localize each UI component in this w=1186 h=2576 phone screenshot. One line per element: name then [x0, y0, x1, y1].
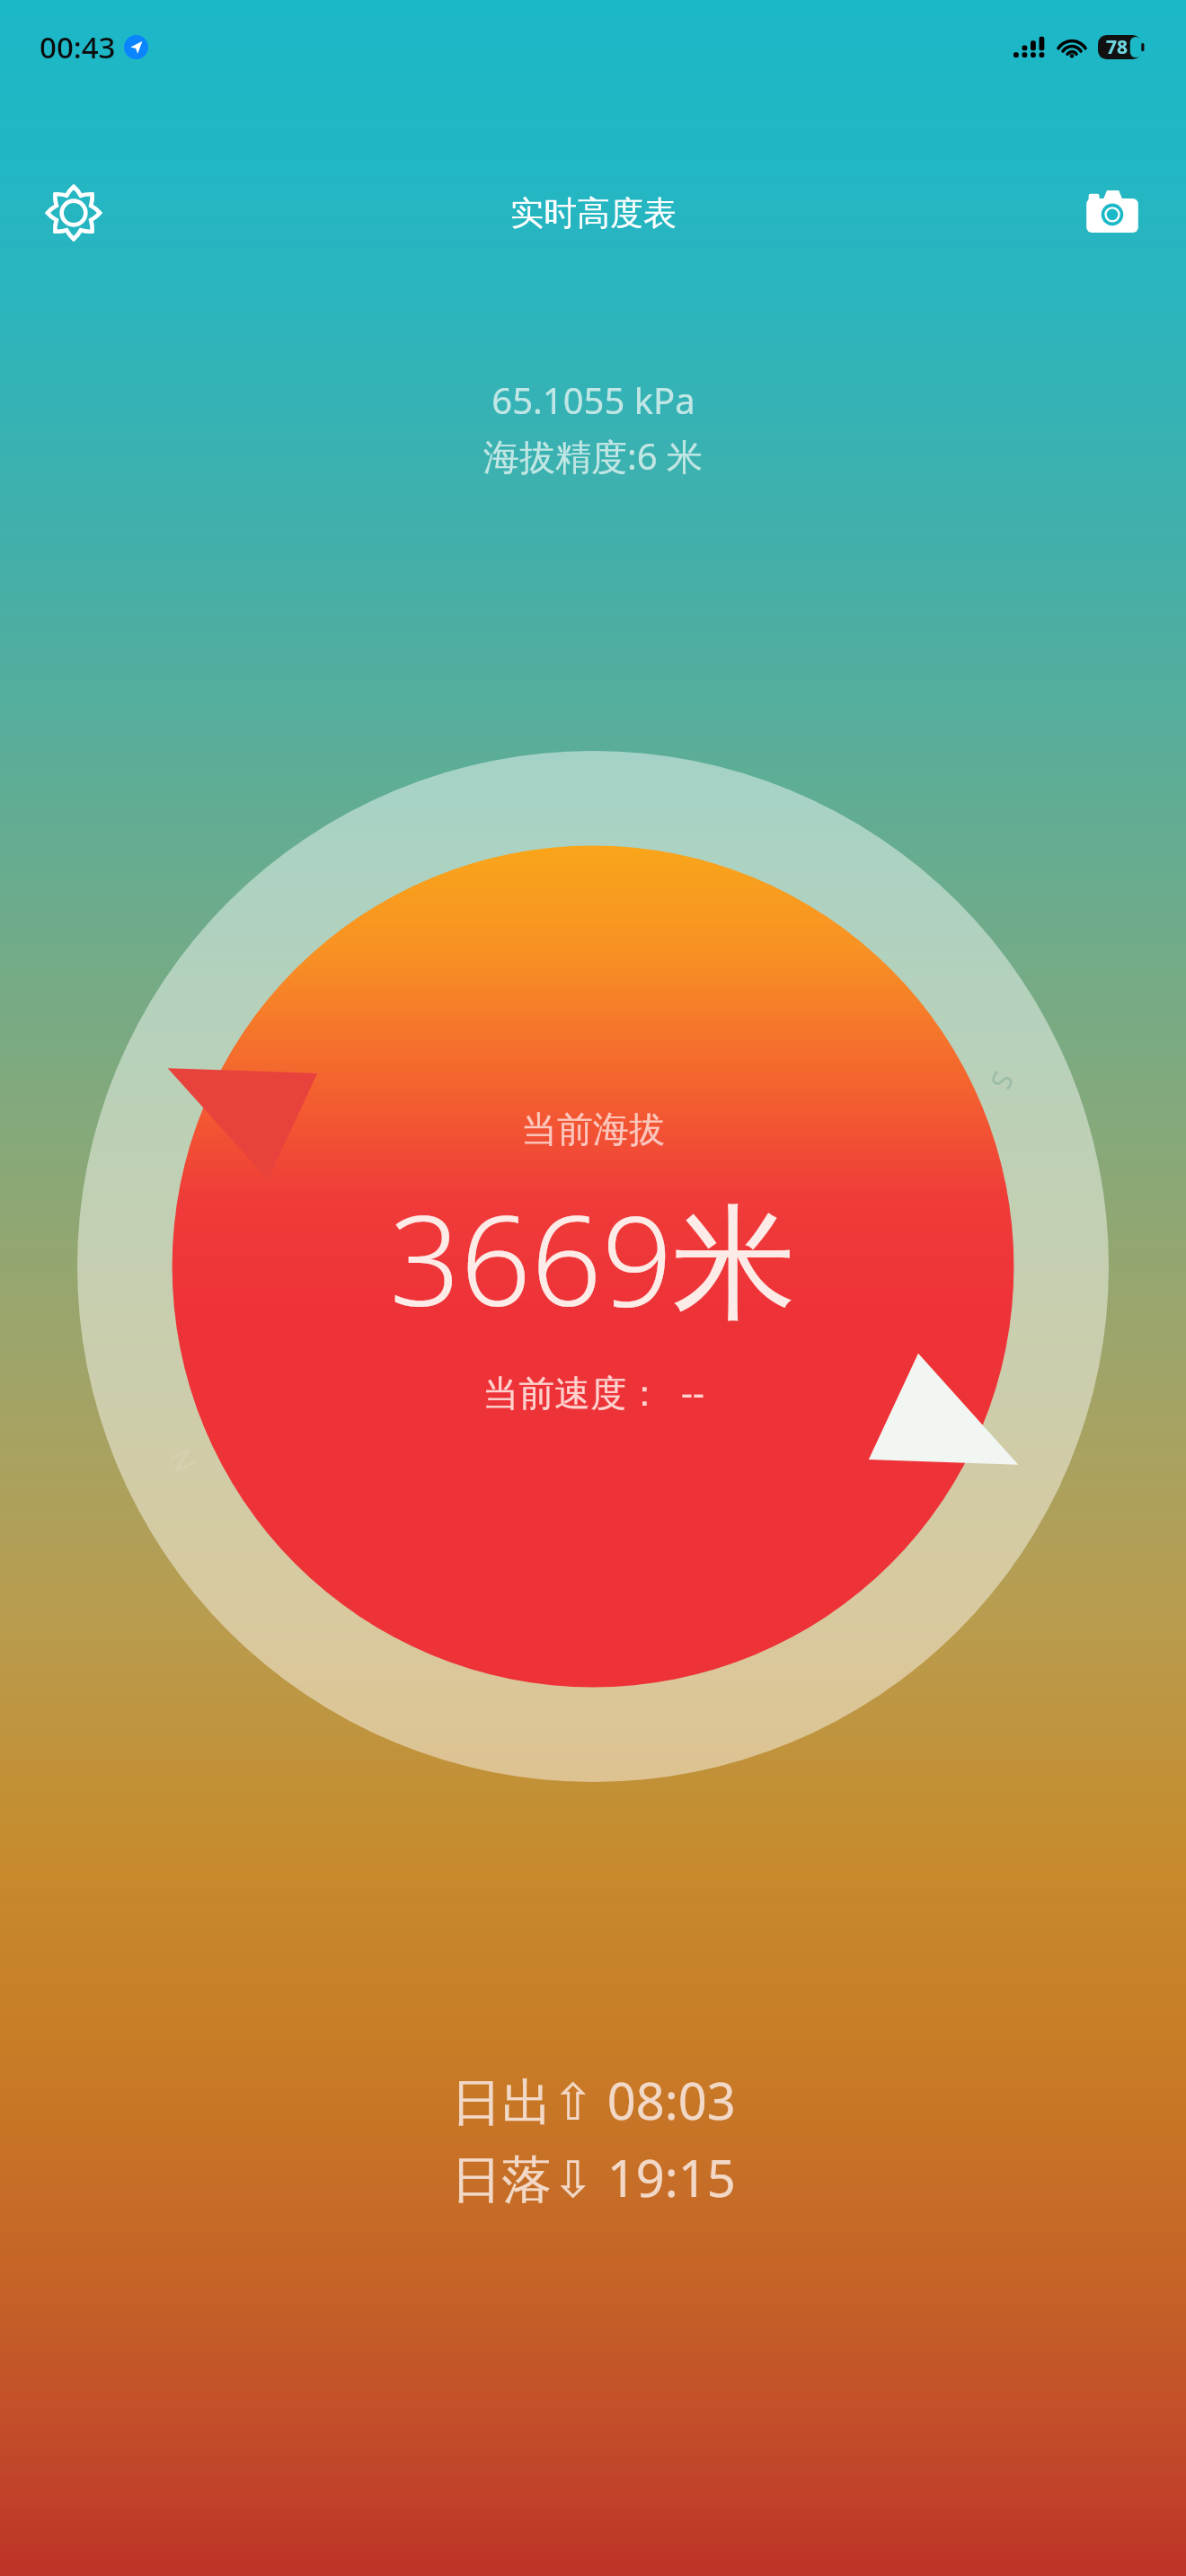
staticText: S — [982, 1066, 1023, 1097]
staticText: 日落⇩ 19:15 — [451, 2143, 736, 2211]
button[interactable]: N — [77, 751, 1109, 1782]
staticText: 当前速度： -- — [482, 1367, 704, 1416]
staticText: 海拔精度:6 米 — [483, 431, 703, 481]
staticText: 00:43 — [40, 27, 116, 67]
staticText: 日出⇧ 08:03 — [451, 2066, 736, 2134]
staticText: 实时高度表 — [510, 192, 677, 234]
button[interactable]: Settings — [36, 175, 111, 251]
staticText: 当前海拔 — [521, 1107, 665, 1151]
button[interactable]: Camera — [1075, 175, 1150, 251]
staticText: 65.1055 kPa — [491, 375, 695, 424]
staticText: 78 — [1106, 34, 1128, 60]
staticText: 3669米 — [389, 1173, 797, 1342]
